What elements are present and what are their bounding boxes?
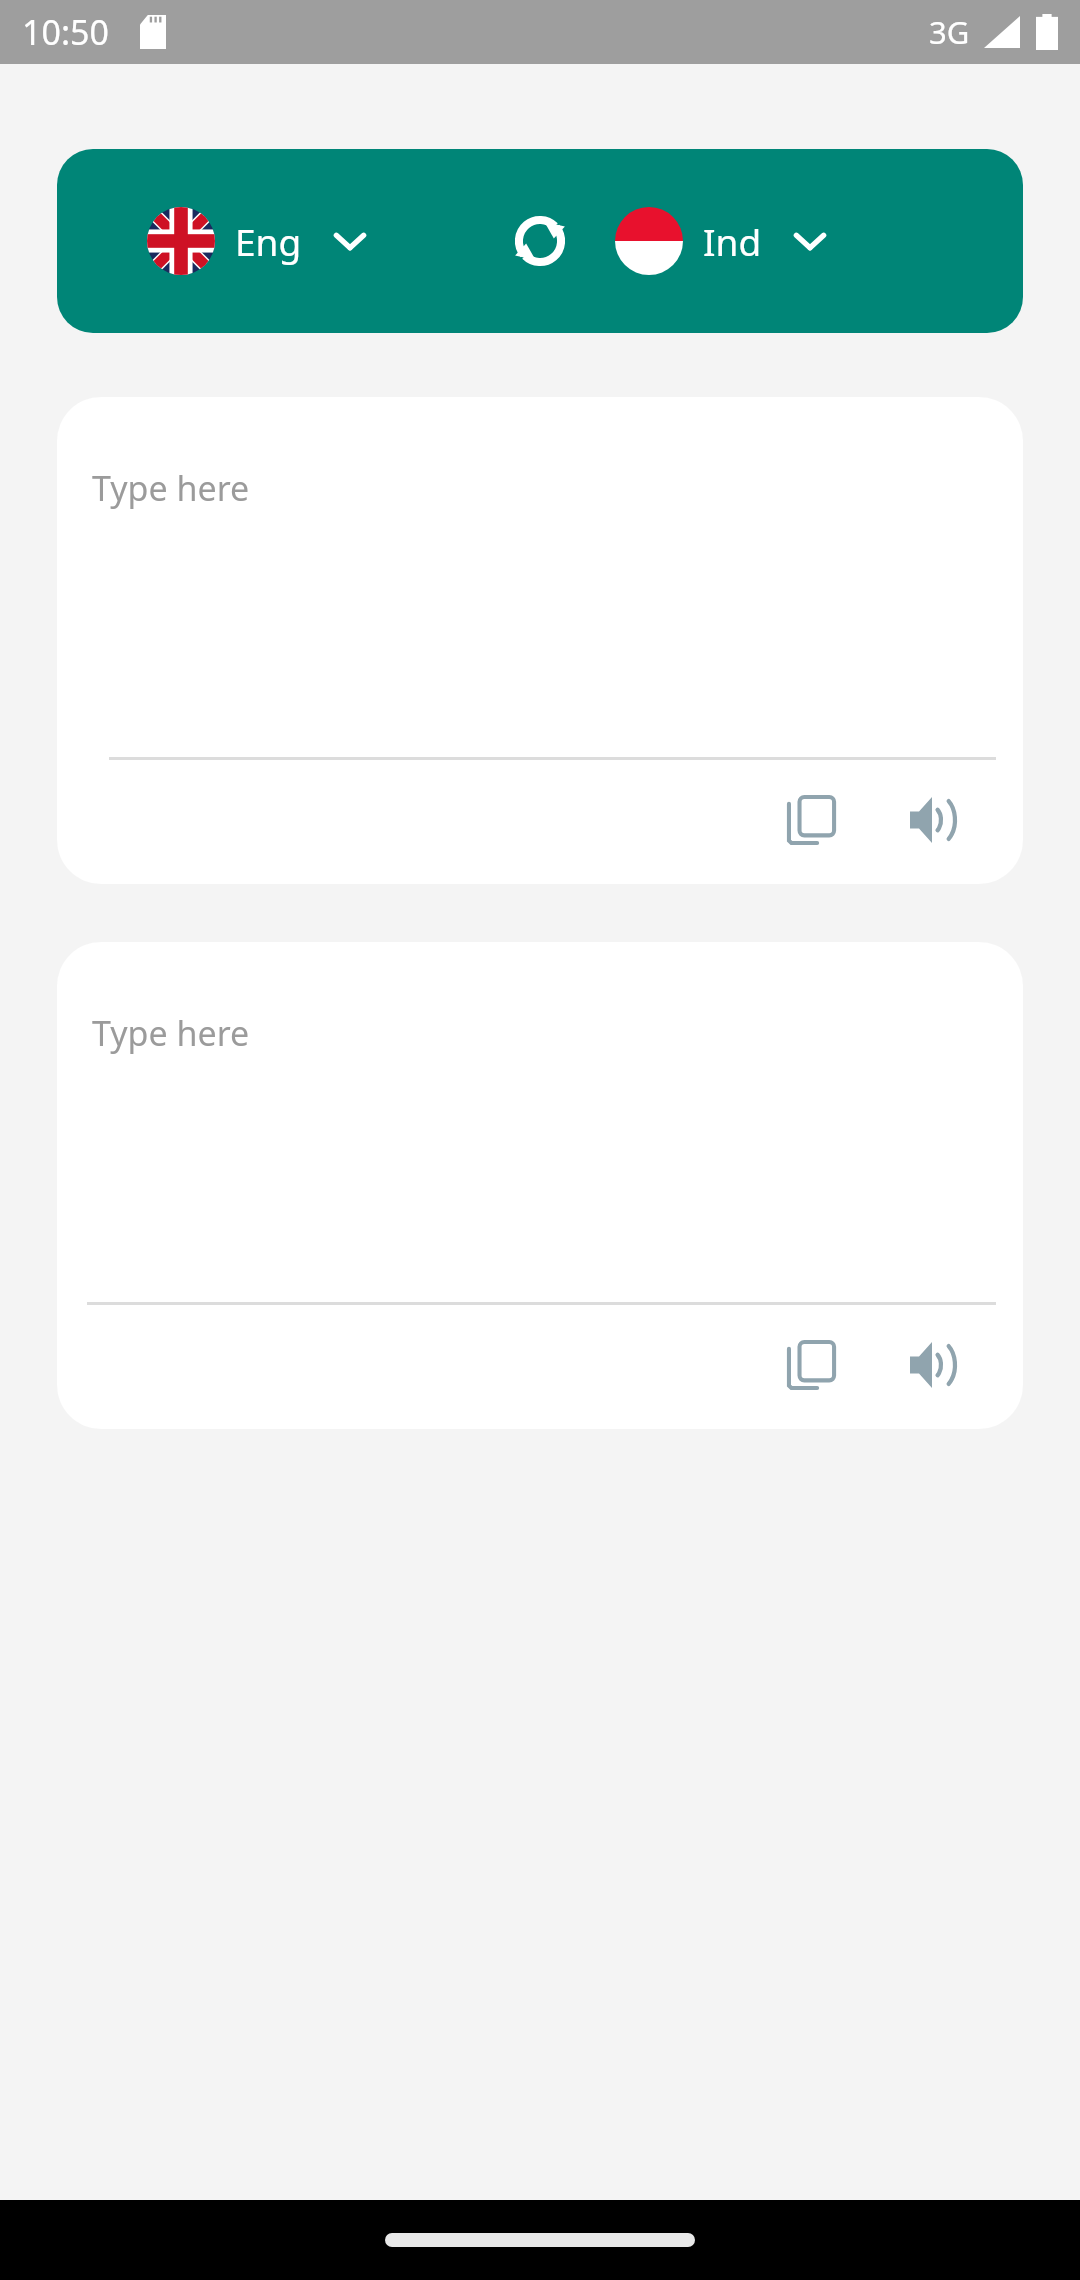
- staticText: 10:50: [22, 9, 109, 55]
- button[interactable]: Copy: [768, 776, 856, 864]
- staticText: Type here: [92, 1010, 250, 1056]
- staticText: Type here: [92, 465, 250, 511]
- button[interactable]: Eng: [57, 207, 485, 275]
- button[interactable]: Ind: [595, 207, 1023, 275]
- button[interactable]: Swap languages: [485, 186, 595, 296]
- staticText: Ind: [703, 216, 762, 266]
- button[interactable]: Type here: [57, 397, 1023, 884]
- staticText: 3G: [929, 11, 970, 53]
- button[interactable]: Speak: [890, 776, 978, 864]
- button[interactable]: Speak: [890, 1321, 978, 1409]
- button[interactable]: Copy: [768, 1321, 856, 1409]
- button[interactable]: Type here: [57, 942, 1023, 1429]
- staticText: Eng: [235, 216, 302, 266]
